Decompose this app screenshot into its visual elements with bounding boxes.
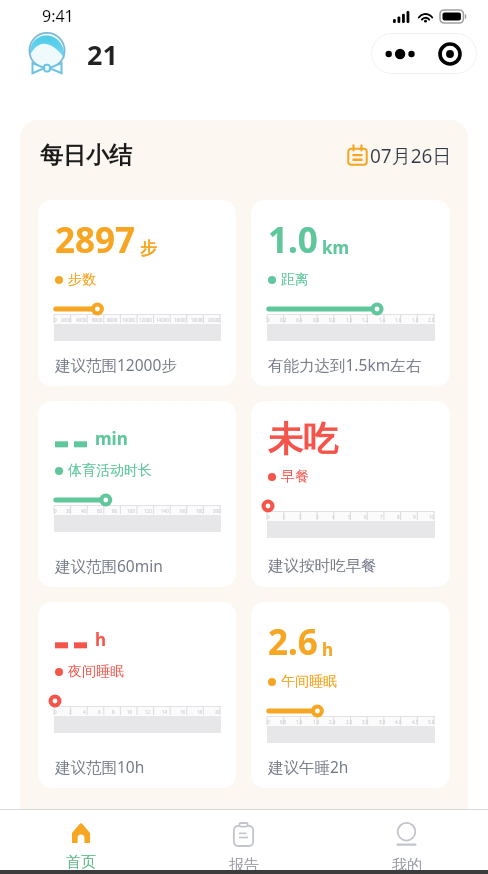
staticText: 4.0 bbox=[395, 719, 402, 725]
staticText: 10000 bbox=[122, 317, 135, 323]
staticText: 1.0 bbox=[296, 719, 303, 725]
staticText: 14 bbox=[162, 709, 168, 715]
staticText: 报告 bbox=[229, 856, 259, 870]
staticText: 早餐 bbox=[281, 468, 309, 486]
staticText: 18 bbox=[197, 709, 203, 715]
staticText: 20000 bbox=[208, 317, 221, 323]
staticText: 0.2 bbox=[280, 317, 287, 323]
staticText: 体育活动时长 bbox=[68, 462, 152, 480]
staticText: 1.6 bbox=[395, 317, 402, 323]
staticText: 1 bbox=[283, 514, 286, 520]
staticText: 0.5 bbox=[280, 719, 287, 725]
button[interactable]: 报告 bbox=[162, 810, 325, 870]
staticText: 0 bbox=[54, 317, 57, 323]
staticText: 160 bbox=[179, 508, 187, 514]
staticText: h bbox=[95, 628, 107, 651]
staticText: 我的 bbox=[392, 856, 422, 870]
staticText: 60 bbox=[97, 508, 103, 514]
staticText: 2 bbox=[299, 514, 302, 520]
staticText: min bbox=[95, 427, 128, 450]
staticText: 有能力达到1.5km左右 bbox=[268, 354, 422, 375]
staticText: 每日小结 bbox=[40, 141, 132, 170]
staticText: 07月26日 bbox=[370, 143, 452, 169]
staticText: 0 bbox=[267, 317, 270, 323]
staticText: 建议范围10h bbox=[55, 756, 145, 777]
button[interactable]: 未吃 bbox=[251, 401, 450, 587]
staticText: 18000 bbox=[191, 317, 204, 323]
staticText: 6000 bbox=[92, 317, 103, 323]
staticText: 21 bbox=[87, 36, 118, 73]
button[interactable]: min bbox=[38, 401, 236, 587]
staticText: 0.8 bbox=[329, 317, 336, 323]
staticText: 2897 bbox=[55, 216, 136, 264]
staticText: 6 bbox=[98, 709, 101, 715]
button[interactable]: 我的 bbox=[325, 810, 488, 870]
staticText: 步 bbox=[140, 238, 157, 259]
button[interactable]: 首页 bbox=[0, 810, 162, 870]
staticText: 5.0 bbox=[428, 719, 435, 725]
staticText: 16000 bbox=[174, 317, 187, 323]
staticText: 9 bbox=[413, 514, 416, 520]
staticText: 0.6 bbox=[313, 317, 320, 323]
staticText: 2.6 bbox=[268, 618, 318, 666]
staticText: 200 bbox=[213, 508, 221, 514]
staticText: 14000 bbox=[156, 317, 169, 323]
staticText: 2 bbox=[69, 709, 72, 715]
staticText: 2.5 bbox=[346, 719, 353, 725]
button[interactable]: 21 bbox=[25, 32, 118, 76]
staticText: 5 bbox=[348, 514, 351, 520]
staticText: 6 bbox=[364, 514, 367, 520]
staticText: 午间睡眠 bbox=[281, 673, 337, 691]
staticText: 距离 bbox=[281, 271, 309, 289]
staticText: 3.5 bbox=[379, 719, 386, 725]
staticText: 未吃 bbox=[268, 417, 338, 461]
staticText: 80 bbox=[112, 508, 118, 514]
button[interactable]: h bbox=[38, 602, 236, 788]
staticText: 1.2 bbox=[362, 317, 369, 323]
staticText: 0.4 bbox=[296, 317, 303, 323]
staticText: 8 bbox=[397, 514, 400, 520]
button[interactable]: 2897 bbox=[38, 200, 236, 386]
staticText: 2.0 bbox=[428, 317, 435, 323]
staticText: 10 bbox=[127, 709, 133, 715]
staticText: 180 bbox=[196, 508, 204, 514]
staticText: 1.8 bbox=[412, 317, 419, 323]
staticText: 40 bbox=[81, 508, 87, 514]
staticText: 1.5 bbox=[313, 719, 320, 725]
staticText: 140 bbox=[161, 508, 169, 514]
staticText: h bbox=[322, 638, 334, 661]
button[interactable]: More options bbox=[371, 33, 477, 74]
staticText: 建议按时吃早餐 bbox=[268, 556, 377, 576]
staticText: 建议午睡2h bbox=[268, 756, 349, 777]
staticText: km bbox=[322, 236, 350, 259]
staticText: 100 bbox=[127, 508, 135, 514]
staticText: 建议范围60min bbox=[55, 555, 163, 576]
staticText: 4000 bbox=[76, 317, 87, 323]
staticText: 12000 bbox=[139, 317, 152, 323]
staticText: 120 bbox=[144, 508, 152, 514]
staticText: 3.0 bbox=[362, 719, 369, 725]
staticText: 8000 bbox=[107, 317, 118, 323]
staticText: 7 bbox=[380, 514, 383, 520]
button[interactable]: 1.0 bbox=[251, 200, 450, 386]
staticText: 1.0 bbox=[346, 317, 353, 323]
staticText: 1.4 bbox=[379, 317, 386, 323]
staticText: 4.5 bbox=[412, 719, 419, 725]
staticText: 20 bbox=[66, 508, 72, 514]
staticText: 2.0 bbox=[329, 719, 336, 725]
staticText: 10 bbox=[429, 514, 435, 520]
staticText: 0 bbox=[267, 719, 270, 725]
button[interactable]: 2.6 bbox=[251, 602, 450, 788]
staticText: 步数 bbox=[68, 271, 96, 289]
staticText: 12 bbox=[145, 709, 151, 715]
staticText: 9:41 bbox=[42, 5, 74, 27]
staticText: 建议范围12000步 bbox=[55, 354, 177, 375]
staticText: 1.0 bbox=[268, 216, 318, 264]
staticText: 20 bbox=[215, 709, 221, 715]
staticText: 8 bbox=[112, 709, 115, 715]
staticText: 0 bbox=[267, 514, 270, 520]
staticText: 夜间睡眠 bbox=[68, 663, 124, 681]
staticText: 首页 bbox=[66, 853, 96, 870]
staticText: 3 bbox=[316, 514, 319, 520]
staticText: 0 bbox=[54, 508, 57, 514]
